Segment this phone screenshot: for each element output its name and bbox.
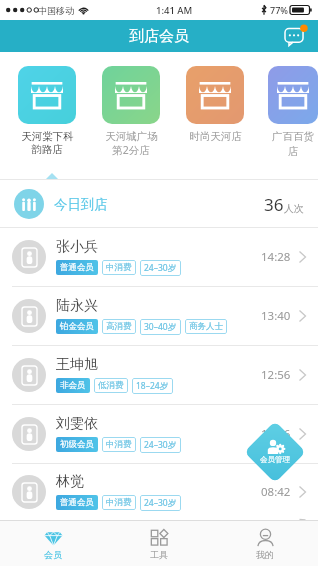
button[interactable]: 张小兵 xyxy=(0,228,318,287)
button[interactable]: 消息 xyxy=(282,22,310,50)
staticText: 中消费 xyxy=(106,497,132,508)
button[interactable]: 刘雯依 xyxy=(0,405,318,464)
staticText: 中消费 xyxy=(106,262,132,273)
staticText: 高消费 xyxy=(106,321,132,332)
staticText: 11:36 xyxy=(261,426,291,442)
staticText: 中消费 xyxy=(106,439,132,450)
staticText: 1:41 AM xyxy=(156,4,193,17)
staticText: 陆永兴 xyxy=(56,297,98,315)
staticText: 张小兵 xyxy=(56,238,98,256)
staticText: 铂金会员 xyxy=(60,321,94,332)
button[interactable]: 会员管理 xyxy=(244,421,306,483)
staticText: 低消费 xyxy=(98,380,124,391)
staticText: 30–40岁 xyxy=(144,321,177,333)
staticText: 王坤旭 xyxy=(56,356,98,374)
staticText: 天河城广场 xyxy=(105,130,158,143)
staticText: 24–30岁 xyxy=(144,497,177,509)
staticText: 13:40 xyxy=(261,308,291,324)
button[interactable]: 天河棠下科 xyxy=(16,66,78,156)
staticText: 工具 xyxy=(150,549,168,560)
staticText: 77% xyxy=(270,4,288,16)
staticText: 会员 xyxy=(44,549,62,560)
staticText: 时尚天河店 xyxy=(189,130,242,143)
staticText: 12:56 xyxy=(261,367,291,383)
staticText: 今日到店 xyxy=(54,196,108,213)
button[interactable]: 陆永兴 xyxy=(0,287,318,346)
staticText: 天河棠下科 xyxy=(21,130,74,143)
button[interactable]: 林觉 xyxy=(0,464,318,520)
staticText: 刘雯依 xyxy=(56,415,98,433)
staticText: 08:42 xyxy=(261,484,291,500)
staticText: 会员管理 xyxy=(260,455,290,464)
staticText: 韵路店 xyxy=(31,143,63,156)
button[interactable]: 天河城广场 xyxy=(100,66,162,157)
button[interactable]: 时尚天河店 xyxy=(184,66,246,143)
staticText: 商务人士 xyxy=(189,321,223,332)
staticText: 24–30岁 xyxy=(144,439,177,451)
button[interactable]: 工具 xyxy=(106,521,212,566)
staticText: 我的 xyxy=(256,549,274,560)
staticText: 14:28 xyxy=(261,249,291,265)
staticText: 36 xyxy=(264,193,284,216)
staticText: 人次 xyxy=(284,202,304,215)
staticText: 林觉 xyxy=(56,473,84,491)
button[interactable]: 今日到店 xyxy=(0,180,318,228)
staticText: 初级会员 xyxy=(60,439,94,450)
staticText: 18–24岁 xyxy=(136,380,169,392)
button[interactable]: 会员 xyxy=(0,521,106,566)
staticText: 中国移动 xyxy=(38,5,74,16)
button[interactable]: 广百百货店 xyxy=(268,66,318,158)
staticText: 到店会员 xyxy=(129,27,189,46)
staticText: 非会员 xyxy=(60,380,86,391)
staticText: 普通会员 xyxy=(60,262,94,273)
button[interactable]: 我的 xyxy=(212,521,318,566)
staticText: 第2分店 xyxy=(112,143,150,157)
staticText: 广百百货店 xyxy=(268,130,318,158)
button[interactable]: 王坤旭 xyxy=(0,346,318,405)
staticText: 24–30岁 xyxy=(144,262,177,274)
staticText: 普通会员 xyxy=(60,497,94,508)
